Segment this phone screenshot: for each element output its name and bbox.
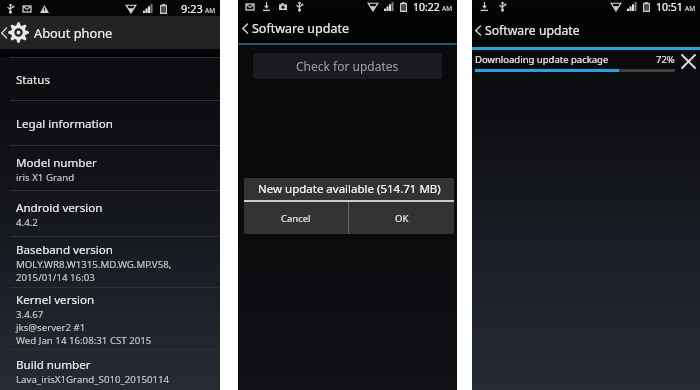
staticText: Software update	[252, 20, 349, 37]
staticText: Model number	[16, 155, 97, 171]
staticText: Build number	[16, 357, 91, 373]
staticText: 4.4.2	[16, 216, 38, 229]
staticText: Software update	[485, 22, 580, 39]
staticText: About phone	[34, 24, 113, 41]
staticText: 10:22	[413, 0, 440, 13]
button[interactable]: Android version	[0, 190, 220, 236]
staticText: Check for updates	[296, 58, 399, 74]
staticText: MOLY.WR8.W1315.MD.WG.MP.V58,	[16, 258, 172, 271]
button[interactable]: Kernel version	[0, 287, 220, 349]
staticText: Android version	[16, 200, 103, 216]
staticText: Cancel	[281, 212, 311, 225]
staticText: 2015/01/14 16:03	[16, 271, 95, 284]
button[interactable]: OK	[349, 202, 454, 234]
button[interactable]: Model number	[0, 145, 220, 190]
staticText: 72%	[656, 53, 675, 66]
staticText: Kernel version	[16, 292, 95, 308]
button[interactable]: Build number	[0, 349, 220, 390]
button[interactable]: About phone	[0, 16, 220, 49]
staticText: New update available (514.71 MB)	[258, 181, 441, 197]
staticText: AM	[205, 6, 216, 15]
staticText: Lava_irisX1Grand_S010_20150114	[16, 373, 170, 386]
staticText: AM	[685, 4, 696, 13]
staticText: Status	[16, 72, 50, 88]
staticText: iris X1 Grand	[16, 171, 75, 184]
staticText: Legal information	[16, 116, 113, 132]
staticText: OK	[395, 212, 409, 225]
button[interactable]: Baseband version	[0, 236, 220, 287]
button[interactable]: Cancel	[244, 202, 348, 234]
button[interactable]: Software update	[238, 13, 457, 43]
button[interactable]: Software update	[472, 13, 700, 47]
staticText: jks@server2 #1	[16, 321, 86, 334]
staticText: 10:51	[656, 0, 683, 13]
staticText: 9:23	[181, 1, 203, 16]
staticText: AM	[442, 4, 453, 13]
button[interactable]: Check for updates	[253, 53, 442, 79]
staticText: Baseband version	[16, 242, 114, 258]
staticText: Wed Jan 14 16:08:31 CST 2015	[16, 334, 152, 347]
button[interactable]: Legal information	[0, 100, 220, 145]
staticText: 3.4.67	[16, 308, 44, 321]
staticText: Downloading update package	[475, 53, 656, 66]
button[interactable]: Cancel download	[676, 50, 700, 73]
button[interactable]: Status	[0, 57, 220, 100]
